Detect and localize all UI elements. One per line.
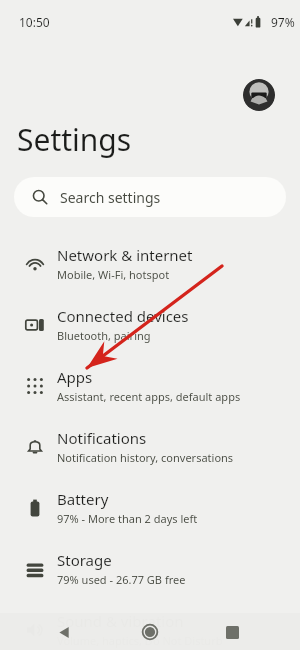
button[interactable]: Recents <box>215 615 249 649</box>
button[interactable]: Account <box>243 79 275 111</box>
button[interactable]: Network & internet <box>0 233 300 294</box>
button[interactable]: Battery <box>0 477 300 538</box>
staticText: Network & internet <box>57 245 193 265</box>
staticText: Settings <box>17 119 132 160</box>
button[interactable]: Sound & vibration <box>0 599 300 650</box>
staticText: Mobile, Wi-Fi, hotspot <box>57 267 170 282</box>
staticText: Search settings <box>60 188 161 207</box>
staticText: 79% used - 26.77 GB free <box>57 572 186 587</box>
staticText: Battery <box>57 489 109 509</box>
button[interactable]: Connected devices <box>0 294 300 355</box>
button[interactable]: Storage <box>0 538 300 599</box>
staticText: Sound & vibration <box>57 611 184 631</box>
staticText: 10:50 <box>19 14 50 30</box>
staticText: 97% <box>271 14 295 30</box>
button[interactable]: Home <box>133 615 167 649</box>
staticText: Volume, haptics, Do Not Disturb <box>57 633 223 648</box>
staticText: Storage <box>57 550 112 570</box>
button[interactable]: Back <box>47 615 81 649</box>
staticText: Notifications <box>57 428 147 448</box>
button[interactable]: Notifications <box>0 416 300 477</box>
staticText: 97% - More than 2 days left <box>57 511 198 526</box>
staticText: Apps <box>57 367 93 387</box>
staticText: Bluetooth, pairing <box>57 328 151 343</box>
staticText: Connected devices <box>57 306 189 326</box>
staticText: Notification history, conversations <box>57 450 234 465</box>
button[interactable]: Apps <box>0 355 300 416</box>
button[interactable]: Search settings <box>14 177 286 217</box>
staticText: Assistant, recent apps, default apps <box>57 389 241 404</box>
